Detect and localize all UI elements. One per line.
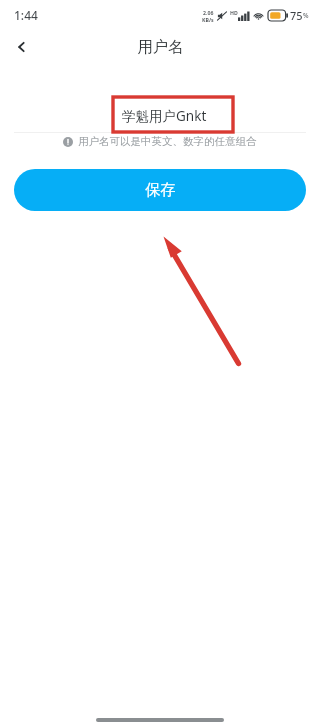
staticText: 2.06 [203, 9, 214, 16]
staticText: 保存 [145, 180, 176, 200]
staticText: 用户名 [137, 37, 184, 57]
button[interactable]: 保存 [14, 169, 306, 211]
staticText: 学魁用户Gnkt [122, 107, 207, 125]
staticText: 75 [290, 8, 303, 23]
staticText: % [303, 11, 309, 20]
button[interactable]: Back [0, 30, 44, 64]
button[interactable]: 学魁用户Gnkt [0, 99, 320, 132]
staticText: 1:44 [14, 7, 38, 23]
staticText: KB/s [202, 16, 214, 23]
staticText: 用户名可以是中英文、数字的任意组合 [78, 135, 257, 148]
staticText: HD [230, 9, 238, 16]
